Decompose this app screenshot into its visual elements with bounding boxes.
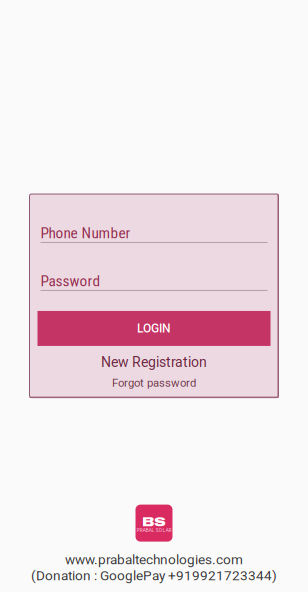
staticText: PRABAL SOLAR: [136, 527, 171, 533]
staticText: Phone Number: [40, 224, 130, 242]
button[interactable]: Forgot password: [37, 376, 270, 390]
button[interactable]: New Registration: [37, 354, 270, 370]
staticText: LOGIN: [137, 321, 171, 335]
button[interactable]: LOGIN: [37, 311, 270, 346]
staticText: BS: [142, 515, 166, 529]
staticText: (Donation : GooglePay +919921723344): [31, 568, 277, 583]
staticText: Password: [40, 272, 100, 290]
staticText: Forgot password: [112, 376, 196, 390]
staticText: www.prabaltechnologies.com: [65, 552, 243, 567]
staticText: New Registration: [101, 354, 207, 370]
